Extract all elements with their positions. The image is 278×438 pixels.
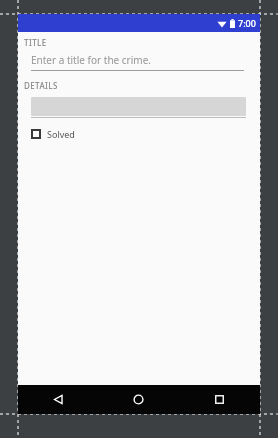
button[interactable]: Solved <box>31 128 75 140</box>
button[interactable]: Enter a title for the crime. <box>31 53 244 71</box>
button[interactable]: Back <box>18 385 98 414</box>
staticText: Enter a title for the crime. <box>31 53 151 67</box>
button[interactable]: Crime date <box>31 97 246 118</box>
staticText: Solved <box>47 128 75 140</box>
staticText: DETAILS <box>24 80 58 91</box>
button[interactable]: Recent apps <box>179 385 260 414</box>
button[interactable]: Home <box>98 385 179 414</box>
staticText: TITLE <box>24 37 47 48</box>
staticText: 7:00 <box>238 17 256 29</box>
